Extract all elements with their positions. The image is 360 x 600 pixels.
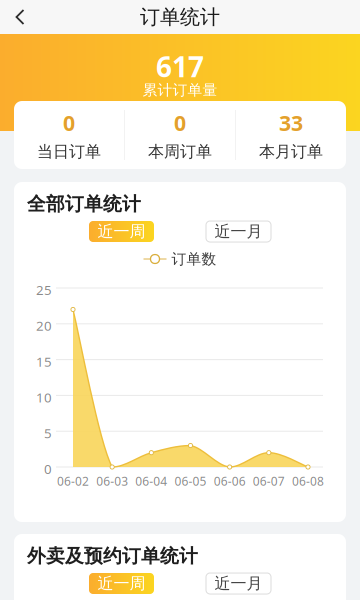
button[interactable]: 近一月: [206, 573, 271, 594]
staticText: 06-03: [96, 473, 128, 489]
staticText: 10: [36, 388, 52, 406]
staticText: 近一月: [214, 574, 262, 593]
staticText: 订单数: [171, 250, 216, 268]
staticText: 06-06: [214, 473, 246, 489]
button[interactable]: 近一周: [89, 221, 154, 242]
staticText: 06-07: [253, 473, 285, 489]
staticText: 617: [156, 48, 204, 85]
staticText: 全部订单统计: [27, 192, 141, 215]
staticText: 外卖及预约订单统计: [27, 544, 198, 567]
staticText: 06-04: [135, 473, 167, 489]
staticText: 06-08: [292, 473, 324, 489]
staticText: 当日订单: [37, 142, 101, 161]
staticText: 订单统计: [140, 5, 220, 29]
staticText: 06-05: [174, 473, 206, 489]
staticText: 25: [36, 281, 52, 299]
staticText: 近一周: [97, 574, 145, 593]
staticText: 33: [279, 108, 303, 137]
staticText: 20: [36, 317, 52, 334]
staticText: 本周订单: [148, 142, 212, 161]
button[interactable]: 近一月: [206, 221, 271, 242]
staticText: 累计订单量: [142, 81, 217, 99]
staticText: 5: [44, 424, 52, 442]
staticText: 0: [44, 460, 52, 478]
button[interactable]: Back: [0, 0, 40, 34]
staticText: 0: [63, 108, 75, 137]
button[interactable]: 近一周: [89, 573, 154, 594]
staticText: 15: [36, 353, 52, 370]
staticText: 近一周: [97, 222, 145, 241]
staticText: 本月订单: [259, 142, 323, 161]
staticText: 06-02: [57, 473, 89, 489]
staticText: 近一月: [214, 222, 262, 241]
staticText: 0: [174, 108, 186, 137]
